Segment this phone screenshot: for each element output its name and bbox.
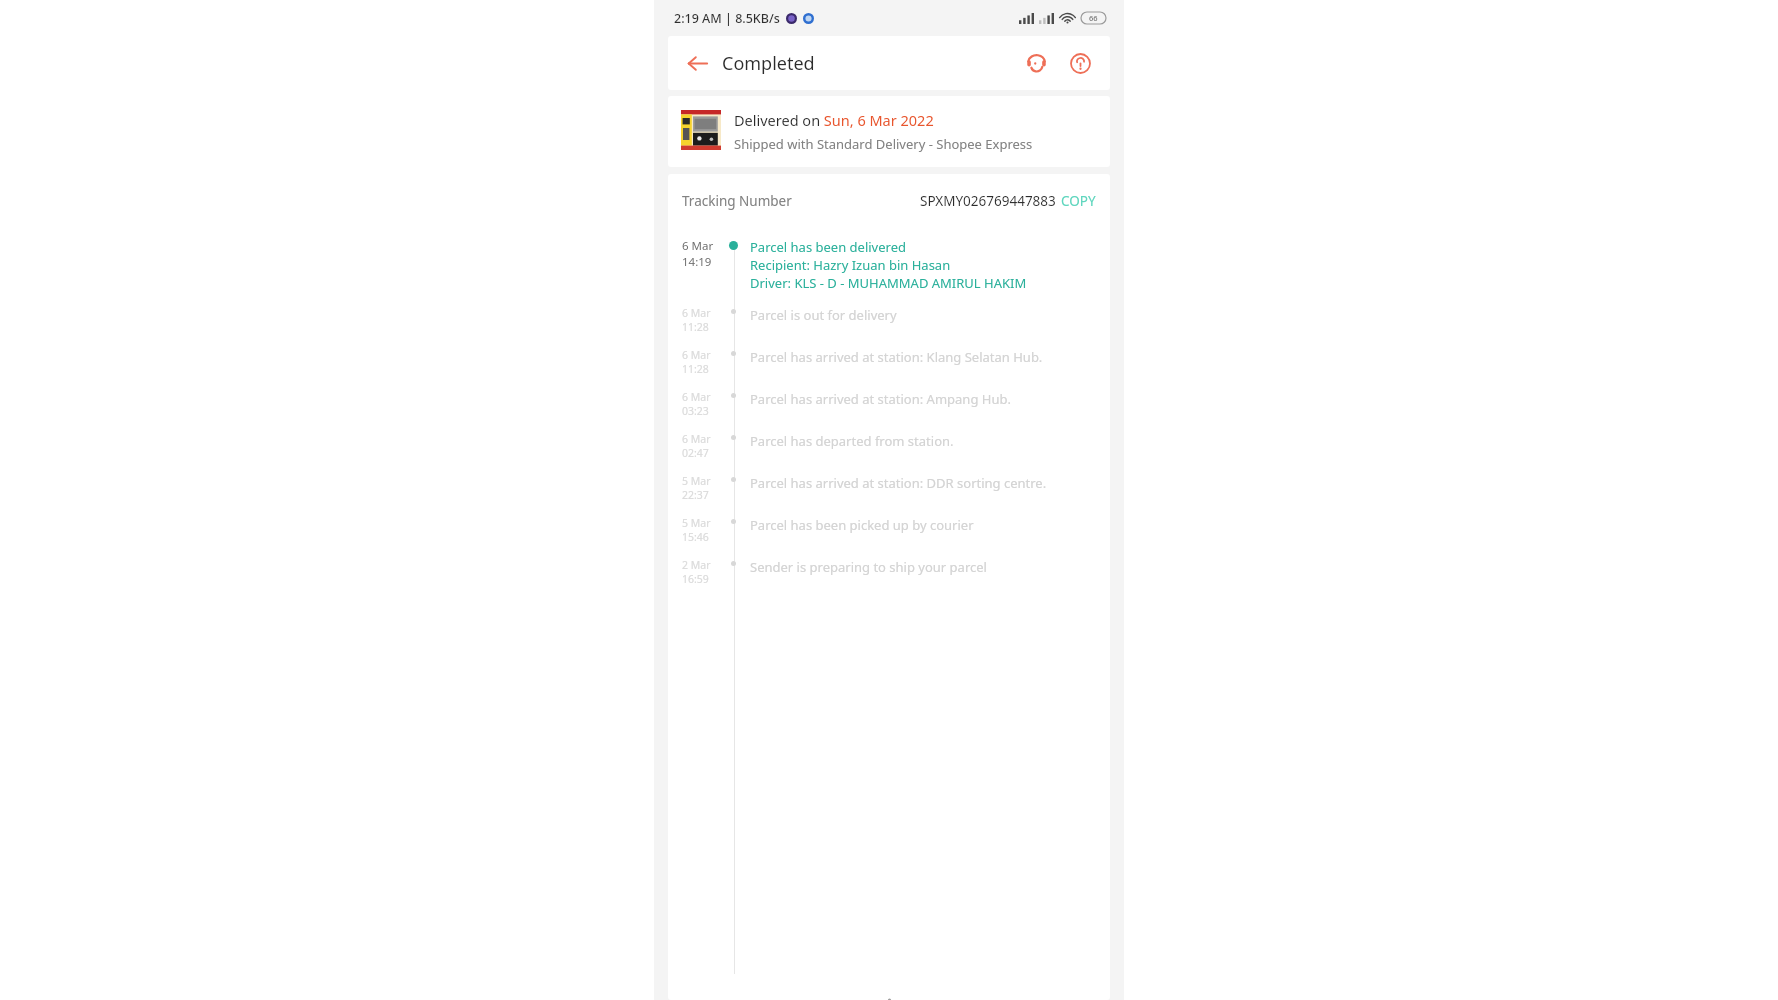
staticText: SPXMY026769447883 (920, 192, 1056, 210)
staticText: 11:28 (682, 362, 709, 376)
button[interactable]: 5 Mar (668, 464, 1110, 506)
staticText: 6 Mar (682, 238, 714, 254)
button[interactable]: COPY (1056, 190, 1096, 212)
staticText: Parcel has arrived at station: Klang Sel… (750, 348, 1043, 366)
staticText: 02:47 (682, 446, 709, 460)
staticText: Recipient: Hazry Izuan bin Hasan (750, 256, 951, 274)
staticText: 16:59 (682, 572, 709, 586)
button[interactable]: 2 Mar (668, 548, 1110, 590)
staticText: 15:46 (682, 530, 709, 544)
staticText: 5 Mar (682, 516, 711, 530)
staticText: Parcel has been delivered (750, 238, 906, 256)
button[interactable]: Back (680, 46, 714, 80)
staticText: Delivered on Sun, 6 Mar 2022 (734, 110, 934, 130)
staticText: Parcel is out for delivery (750, 306, 897, 324)
staticText: Driver: KLS - D - MUHAMMAD AMIRUL HAKIM (750, 274, 1027, 292)
button[interactable]: Customer support chat (1018, 45, 1054, 81)
staticText: 66 (1089, 13, 1098, 23)
button[interactable]: 6 Mar (668, 296, 1110, 338)
staticText: 6 Mar (682, 348, 711, 362)
button[interactable]: 6 Mar (668, 226, 1110, 296)
staticText: Tracking Number (682, 192, 792, 210)
staticText: Sender is preparing to ship your parcel (750, 558, 987, 576)
button[interactable]: 5 Mar (668, 506, 1110, 548)
staticText: 14:19 (682, 254, 712, 270)
button[interactable]: 6 Mar (668, 338, 1110, 380)
staticText: 2 Mar (682, 558, 711, 572)
staticText: Shipped with Standard Delivery - Shopee … (734, 135, 1033, 153)
staticText: Parcel has been picked up by courier (750, 516, 974, 534)
staticText: Parcel has departed from station. (750, 432, 954, 450)
staticText: 03:23 (682, 404, 709, 418)
staticText: 5 Mar (682, 474, 711, 488)
button[interactable]: 6 Mar (668, 380, 1110, 422)
staticText: COPY (1061, 192, 1096, 210)
staticText: 6 Mar (682, 390, 711, 404)
staticText: Completed (722, 51, 815, 76)
staticText: 6 Mar (682, 432, 711, 446)
button[interactable]: 6 Mar (668, 422, 1110, 464)
staticText: Parcel has arrived at station: Ampang Hu… (750, 390, 1011, 408)
button[interactable]: Help (1062, 45, 1098, 81)
staticText: Parcel has arrived at station: DDR sorti… (750, 474, 1047, 492)
staticText: 22:37 (682, 488, 709, 502)
staticText: 2:19 AM | 8.5KB/s (674, 10, 780, 27)
staticText: 11:28 (682, 320, 709, 334)
button[interactable]: Delivered on Sun, 6 Mar 2022 (668, 96, 1110, 167)
staticText: 6 Mar (682, 306, 711, 320)
